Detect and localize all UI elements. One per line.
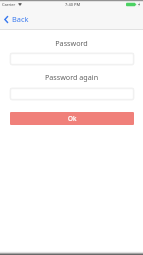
staticText: Password — [0, 38, 143, 48]
button[interactable]: Password input — [10, 53, 134, 65]
staticText: Ok — [68, 114, 77, 123]
staticText: Carrier — [2, 2, 16, 7]
button[interactable]: Back — [0, 10, 35, 28]
staticText: Password again — [0, 72, 143, 82]
staticText: Back — [12, 14, 29, 24]
staticText: 7:40 PM — [65, 2, 81, 7]
other: Wi-Fi — [18, 3, 22, 6]
button[interactable]: Ok — [10, 112, 134, 125]
other: Battery — [126, 2, 140, 7]
button[interactable]: Password input — [10, 88, 134, 100]
